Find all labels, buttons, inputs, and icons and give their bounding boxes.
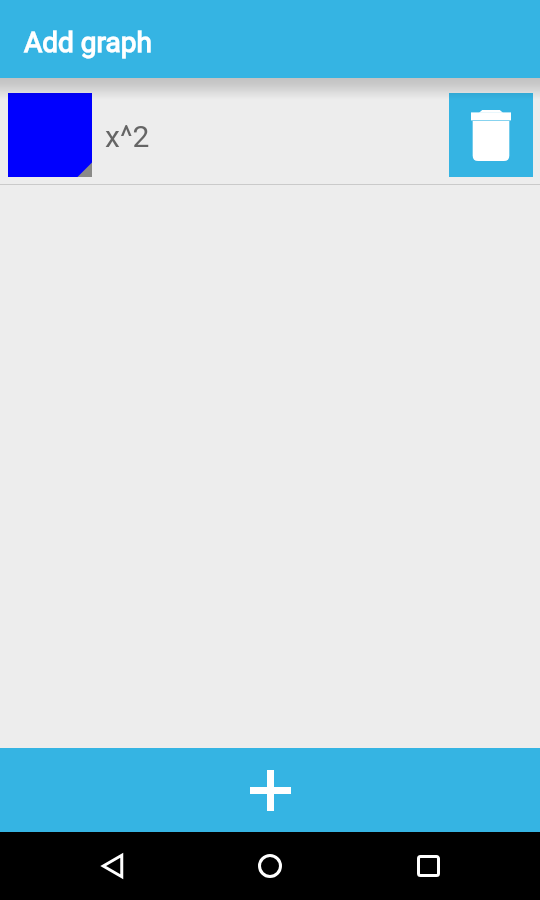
button[interactable]: Delete [449, 93, 533, 177]
button[interactable]: Pick colour [8, 93, 92, 177]
staticText: Add graph [24, 26, 152, 59]
button[interactable]: Pick colour [0, 78, 540, 184]
staticText: x^2 [105, 119, 449, 154]
button[interactable]: Recents [383, 832, 473, 900]
button[interactable]: Add graph [0, 748, 540, 832]
button[interactable]: Home [225, 832, 315, 900]
button[interactable]: Back [67, 832, 157, 900]
